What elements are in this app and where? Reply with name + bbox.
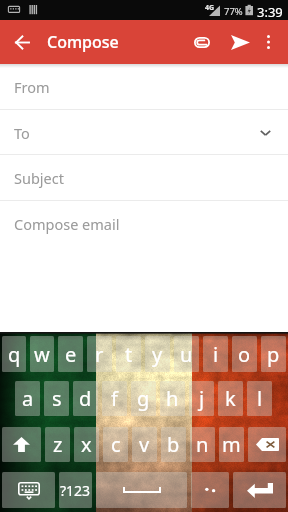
button[interactable]: u [174,336,199,372]
button[interactable]: q [2,336,26,372]
staticText: Compose [47,31,119,53]
staticText: y [152,341,163,368]
staticText: z [53,431,63,458]
button[interactable]: r [87,336,112,372]
button[interactable]: g [131,381,156,416]
button[interactable]: z [45,427,70,462]
button[interactable]: Switch keyboard [2,472,55,508]
button[interactable]: Navigate up [0,20,44,64]
button[interactable]: Attach file [185,20,219,64]
button[interactable]: Send [223,20,257,64]
button[interactable]: t [116,336,141,372]
staticText: r [95,341,104,368]
button[interactable]: More options [253,20,284,64]
button[interactable]: l [247,381,272,416]
button[interactable]: k [218,381,243,416]
button[interactable]: From [0,64,288,110]
button[interactable]: Subject [0,155,288,201]
button[interactable]: Enter [233,472,286,508]
button[interactable]: ?123 [59,472,92,508]
button[interactable]: Compose email [0,201,288,246]
staticText: v [139,431,150,458]
staticText: f [111,385,118,412]
staticText: j [199,385,205,412]
staticText: ?123 [60,481,91,500]
button[interactable]: p [261,336,286,372]
staticText: From [14,77,50,97]
staticText: 4G [205,3,215,13]
staticText: p [267,341,280,368]
button[interactable]: c [103,427,128,462]
button[interactable]: To [0,110,288,155]
staticText: q [8,341,21,368]
staticText: h [166,385,179,412]
staticText: 3:39 [257,3,283,21]
button[interactable]: m [219,427,244,462]
staticText: b [167,431,180,458]
button[interactable]: e [58,336,83,372]
button[interactable]: x [74,427,99,462]
button[interactable]: y [145,336,170,372]
staticText: a [22,385,34,412]
staticText: l [257,385,263,412]
button[interactable]: Delete [248,427,286,462]
staticText: 77% [224,5,243,18]
staticText: d [79,385,92,412]
button[interactable]: a [15,381,40,416]
button[interactable]: i [203,336,228,372]
staticText: Subject [14,168,64,188]
staticText: x [81,431,92,458]
button[interactable]: w [30,336,54,372]
button[interactable]: v [132,427,157,462]
button[interactable]: n [190,427,215,462]
button[interactable]: d [73,381,98,416]
staticText: k [225,385,236,412]
staticText: c [111,431,121,458]
staticText: To [14,123,30,143]
staticText: s [52,385,62,412]
staticText: t [125,341,133,368]
staticText: Compose email [14,214,120,234]
staticText: m [222,431,241,458]
staticText: o [238,341,251,368]
staticText: u [180,341,193,368]
button[interactable]: Shift [2,427,41,462]
button[interactable]: o [232,336,257,372]
button[interactable]: s [44,381,69,416]
button[interactable]: Space [96,472,187,508]
staticText: i [213,341,219,368]
button[interactable]: Comma [191,472,229,508]
button[interactable]: j [189,381,214,416]
button[interactable]: h [160,381,185,416]
staticText: w [34,341,50,368]
staticText: g [137,385,150,412]
staticText: n [196,431,209,458]
button[interactable]: b [161,427,186,462]
button[interactable]: f [102,381,127,416]
staticText: e [65,341,77,368]
